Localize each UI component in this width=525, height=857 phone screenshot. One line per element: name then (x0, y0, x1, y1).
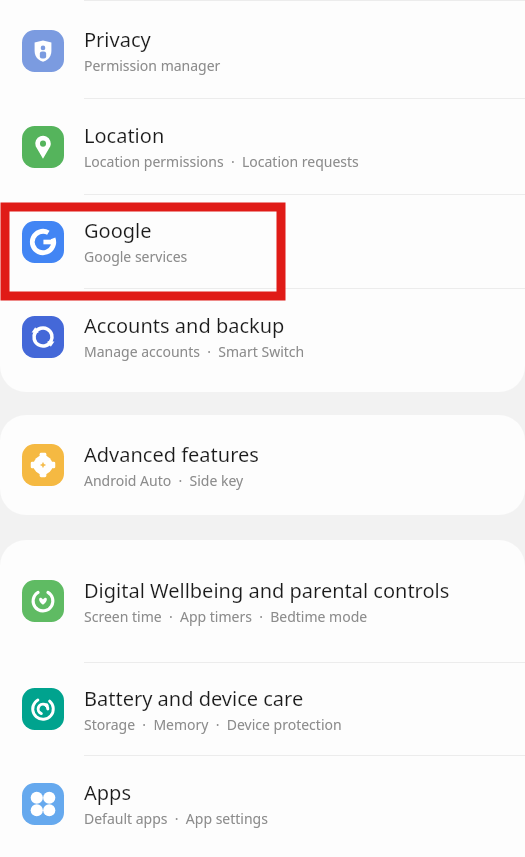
staticText: Google services (84, 247, 188, 266)
staticText: Permission manager (84, 56, 221, 75)
staticText: Screen time · App timers · Bedtime mode (84, 607, 368, 626)
staticText: Location permissions · Location requests (84, 152, 359, 171)
button[interactable]: Privacy (0, 3, 525, 98)
staticText: Google (84, 217, 152, 244)
staticText: Storage · Memory · Device protection (84, 715, 342, 734)
staticText: Battery and device care (84, 685, 304, 712)
button[interactable]: Google (0, 195, 525, 288)
staticText: Privacy (84, 26, 151, 53)
staticText: Digital Wellbeing and parental controls (84, 577, 450, 604)
staticText: Default apps · App settings (84, 809, 268, 828)
staticText: Manage accounts · Smart Switch (84, 342, 305, 361)
staticText: Accounts and backup (84, 312, 285, 339)
button[interactable]: Battery and device care (0, 663, 525, 755)
staticText: Advanced features (84, 441, 259, 468)
staticText: Apps (84, 779, 131, 806)
button[interactable]: Location (0, 99, 525, 194)
button[interactable]: Digital Wellbeing and parental controls (0, 540, 525, 662)
button[interactable]: Accounts and backup (0, 289, 525, 384)
staticText: Android Auto · Side key (84, 471, 244, 490)
button[interactable]: Apps (0, 756, 525, 851)
button[interactable]: Advanced features (0, 415, 525, 515)
staticText: Location (84, 122, 165, 149)
